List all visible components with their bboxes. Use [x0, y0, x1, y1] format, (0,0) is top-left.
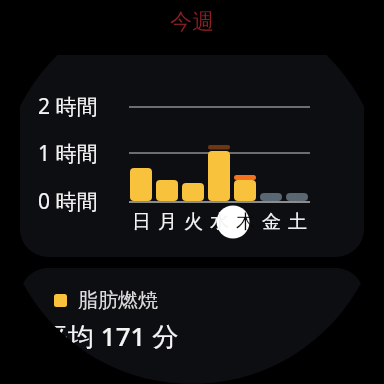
staticText: 0 時間 — [38, 187, 98, 215]
staticText: 1 時間 — [38, 139, 98, 167]
button[interactable]: 土 — [284, 208, 310, 236]
staticText: 月 — [158, 210, 177, 234]
button[interactable]: 木 — [232, 208, 258, 236]
button[interactable]: 月 — [154, 208, 180, 236]
staticText: 平均 171 分 — [42, 318, 179, 354]
staticText: 土 — [288, 210, 307, 234]
staticText: 火 — [184, 210, 203, 234]
button[interactable]: 火 — [180, 208, 206, 236]
button[interactable]: 今週 — [146, 5, 238, 39]
button[interactable]: Fat burn summary — [20, 268, 364, 384]
button[interactable]: 金 — [258, 208, 284, 236]
button[interactable]: 水 — [206, 208, 232, 236]
staticText: 水 — [210, 210, 229, 234]
staticText: 今週 — [170, 8, 214, 36]
staticText: 木 — [236, 210, 255, 234]
staticText: 2 時間 — [38, 92, 98, 120]
button[interactable]: 日 — [128, 208, 154, 236]
staticText: 脂肪燃焼 — [78, 288, 158, 313]
staticText: 金 — [262, 210, 281, 234]
staticText: 日 — [132, 210, 151, 234]
button[interactable]: Weekly activity chart — [20, 55, 364, 257]
